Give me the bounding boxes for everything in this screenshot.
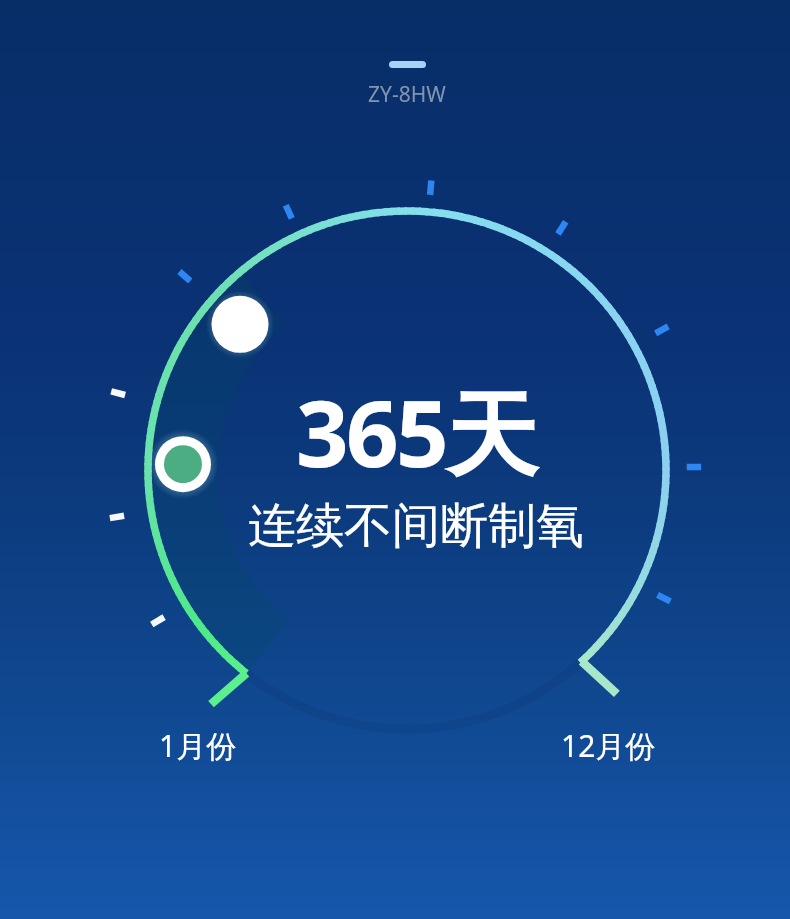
- button[interactable]: 12月份: [561, 725, 656, 766]
- staticText: 连续不间断制氧: [248, 496, 584, 556]
- staticText: 1月份: [159, 725, 237, 766]
- button[interactable]: Oxygen production progress ring, 365 day…: [148, 211, 666, 729]
- staticText: 12月份: [561, 725, 656, 766]
- staticText: 365天: [296, 369, 536, 495]
- button[interactable]: 1月份: [159, 725, 237, 766]
- staticText: ZY-8HW: [368, 80, 446, 109]
- button[interactable]: Device ZY-8HW: [368, 61, 446, 97]
